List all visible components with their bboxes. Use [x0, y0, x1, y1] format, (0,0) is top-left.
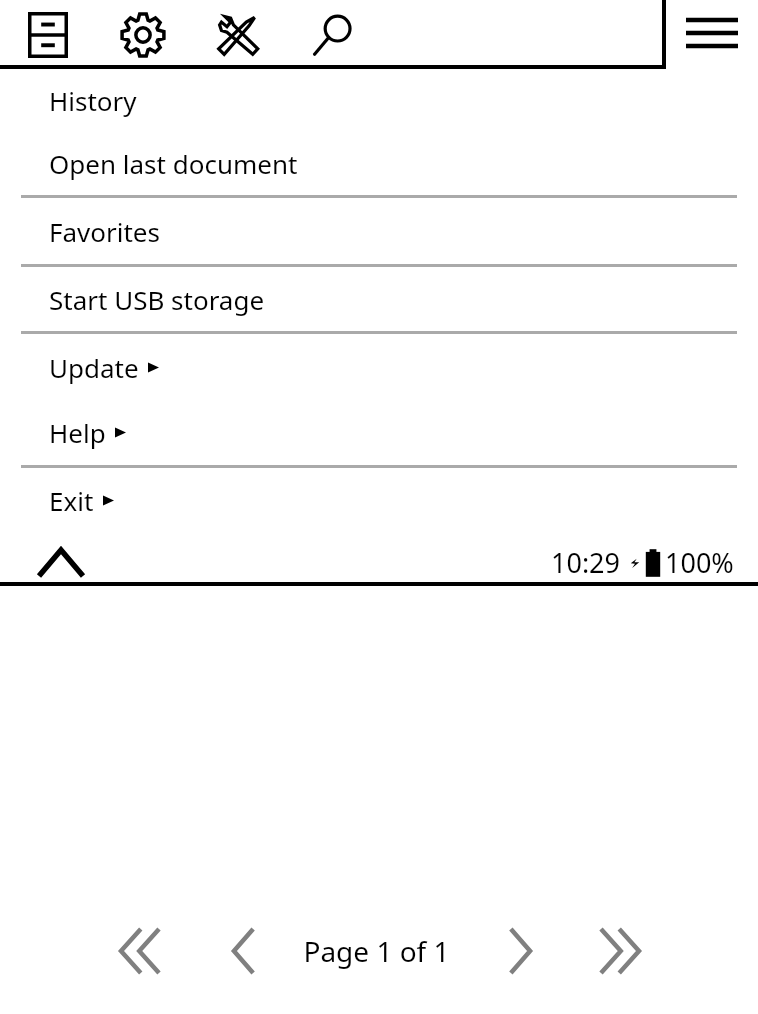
button[interactable]: Settings	[95, 2, 190, 67]
button[interactable]: Exit	[0, 468, 758, 532]
button[interactable]: Menu	[666, 0, 758, 65]
button[interactable]: History	[0, 69, 758, 132]
button[interactable]: Favorites	[0, 198, 758, 264]
button[interactable]: Next page	[488, 921, 552, 981]
staticText: Exit	[49, 483, 94, 518]
button[interactable]: First page	[108, 921, 172, 981]
staticText: 100%	[665, 544, 734, 581]
button[interactable]: Search	[285, 2, 380, 67]
staticText: Update	[49, 350, 139, 385]
staticText: Help	[49, 415, 106, 450]
staticText: 10:29	[551, 544, 621, 581]
button[interactable]: Open last document	[0, 132, 758, 195]
button[interactable]: Previous page	[212, 921, 276, 981]
button[interactable]: Update	[0, 334, 758, 400]
staticText: Open last document	[49, 146, 298, 181]
staticText: Page 1 of 1	[303, 932, 450, 970]
staticText: Start USB storage	[49, 282, 265, 317]
button[interactable]: Last page	[588, 921, 652, 981]
staticText: History	[49, 83, 137, 118]
staticText: Favorites	[49, 214, 160, 249]
button[interactable]: Collapse	[34, 546, 88, 580]
button[interactable]: Start USB storage	[0, 267, 758, 331]
button[interactable]: Help	[0, 400, 758, 465]
button[interactable]: Library	[0, 2, 95, 67]
button[interactable]: Tools	[190, 2, 285, 67]
